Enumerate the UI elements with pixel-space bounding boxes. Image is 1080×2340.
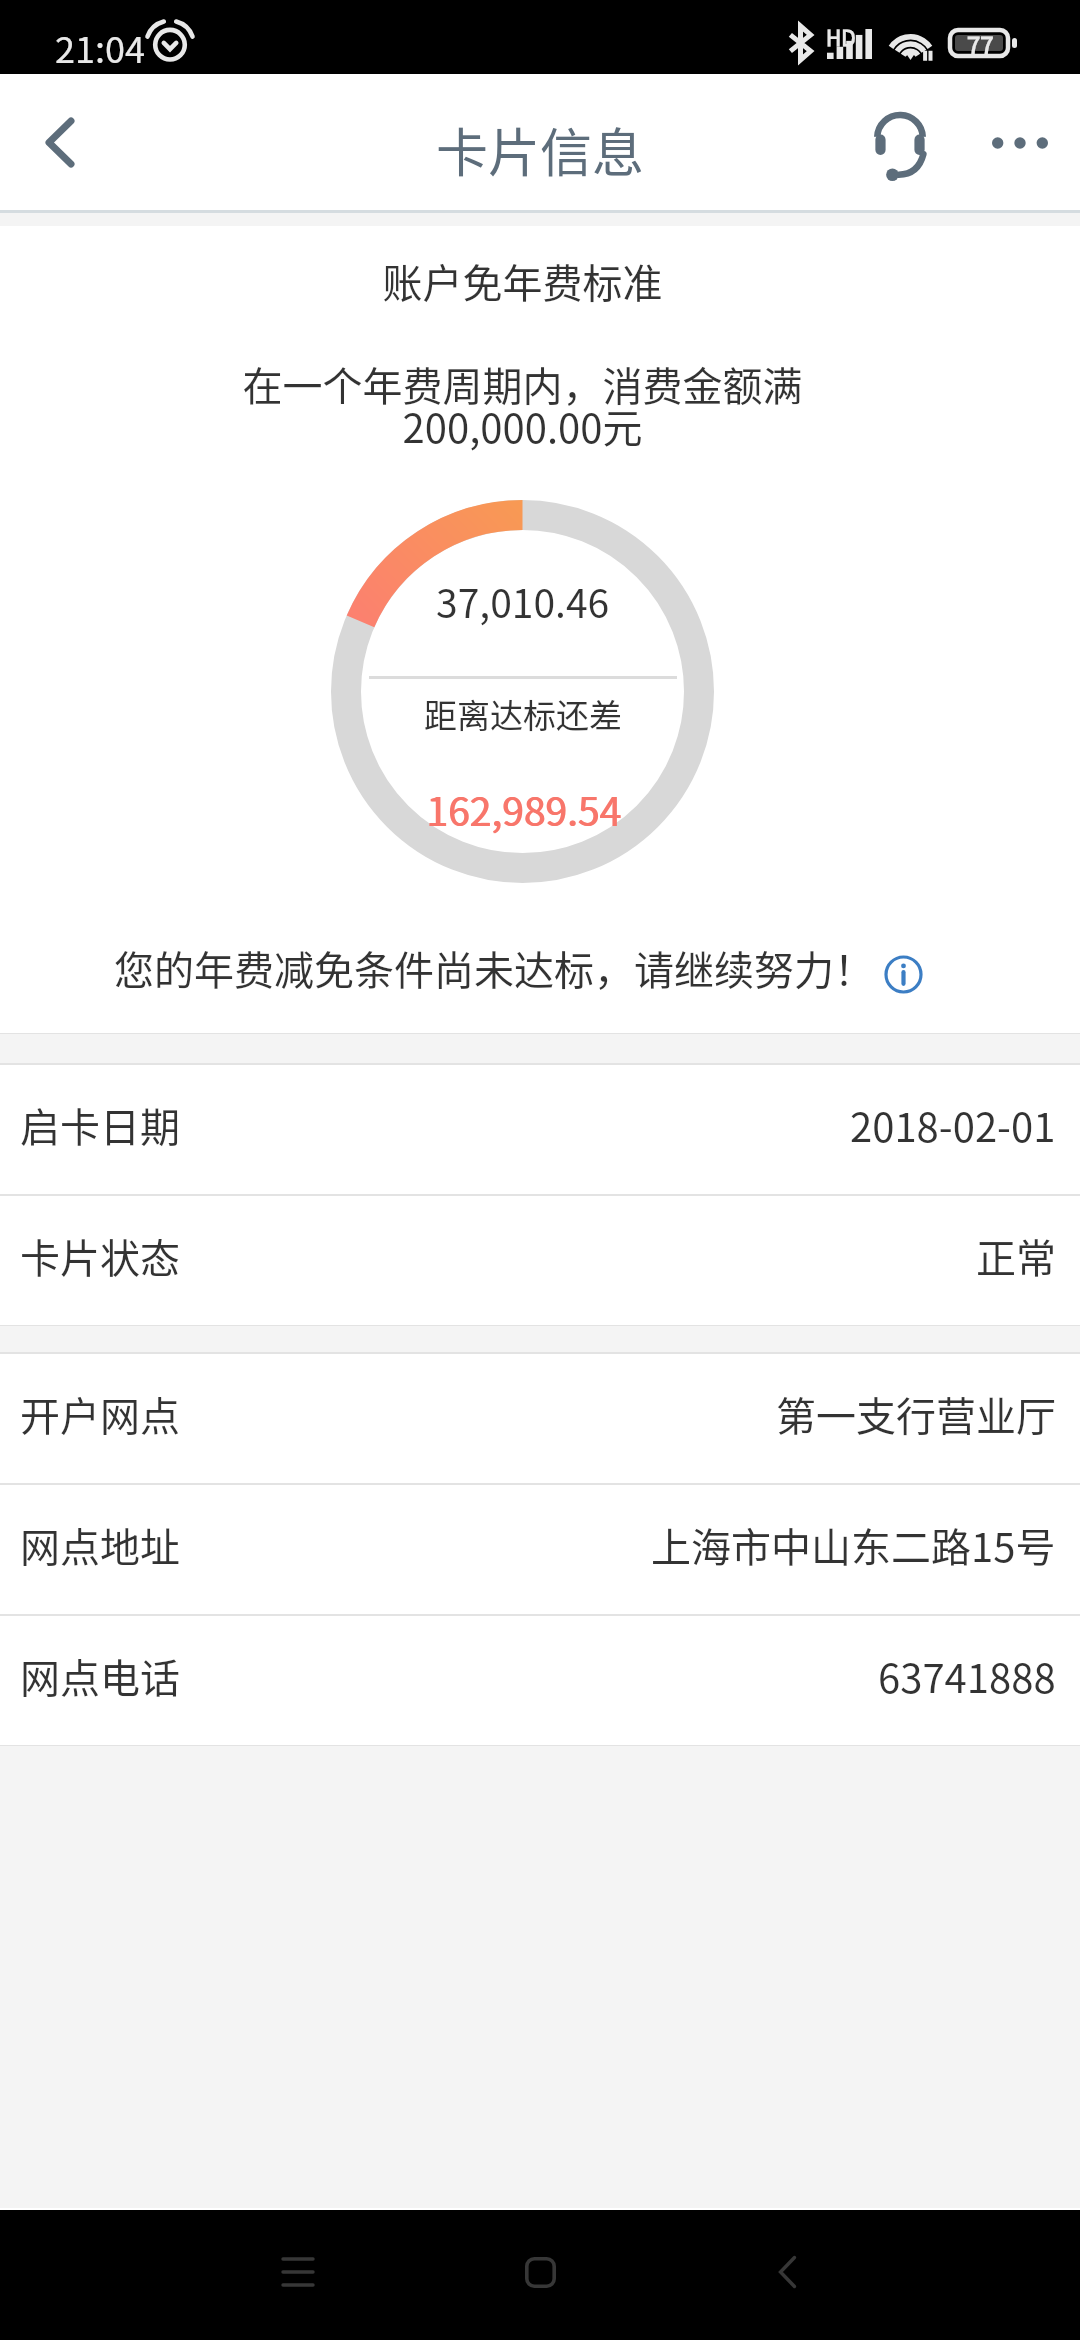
button[interactable]: Back — [712, 2207, 862, 2337]
button[interactable]: 开户网点 — [0, 1354, 1080, 1483]
staticText: 在一个年费周期内，消费金额满 200,000.00元 — [0, 355, 1045, 454]
staticText: HD — [826, 22, 856, 52]
staticText: 77 — [967, 27, 994, 57]
other: Info — [884, 955, 923, 994]
staticText: 63741888 — [878, 1647, 1056, 1705]
staticText: 账户免年费标准 — [0, 252, 1045, 310]
staticText: 网点地址 — [20, 1516, 180, 1574]
staticText: 您的年费减免条件尚未达标，请继续努力！ — [114, 939, 874, 997]
button[interactable]: More options — [960, 82, 1080, 203]
staticText: 正常 — [976, 1227, 1056, 1285]
staticText: 距离达标还差 — [424, 690, 622, 738]
staticText: 上海市中山东二路15号 — [651, 1516, 1056, 1574]
button[interactable]: Back — [0, 74, 120, 210]
staticText: 开户网点 — [20, 1385, 180, 1443]
button[interactable]: 网点电话 — [0, 1616, 1080, 1745]
button[interactable]: Recent apps — [223, 2207, 373, 2337]
button[interactable]: 启卡日期 — [0, 1065, 1080, 1194]
staticText: 卡片状态 — [20, 1227, 180, 1285]
button[interactable]: Home — [465, 2207, 615, 2337]
staticText: 网点电话 — [20, 1647, 180, 1705]
staticText: 37,010.46 — [436, 573, 610, 629]
button[interactable]: 网点地址 — [0, 1485, 1080, 1614]
staticText: 2018-02-01 — [850, 1096, 1056, 1154]
staticText: 卡片信息 — [436, 112, 645, 187]
staticText: 162,989.54 — [427, 781, 622, 837]
staticText: 第一支行营业厅 — [776, 1385, 1056, 1443]
button[interactable]: 卡片状态 — [0, 1196, 1080, 1325]
staticText: 启卡日期 — [20, 1096, 180, 1154]
staticText: 162,989.54 — [426, 781, 621, 837]
button[interactable]: Customer service — [839, 87, 960, 208]
staticText: 21:04 — [55, 21, 145, 73]
